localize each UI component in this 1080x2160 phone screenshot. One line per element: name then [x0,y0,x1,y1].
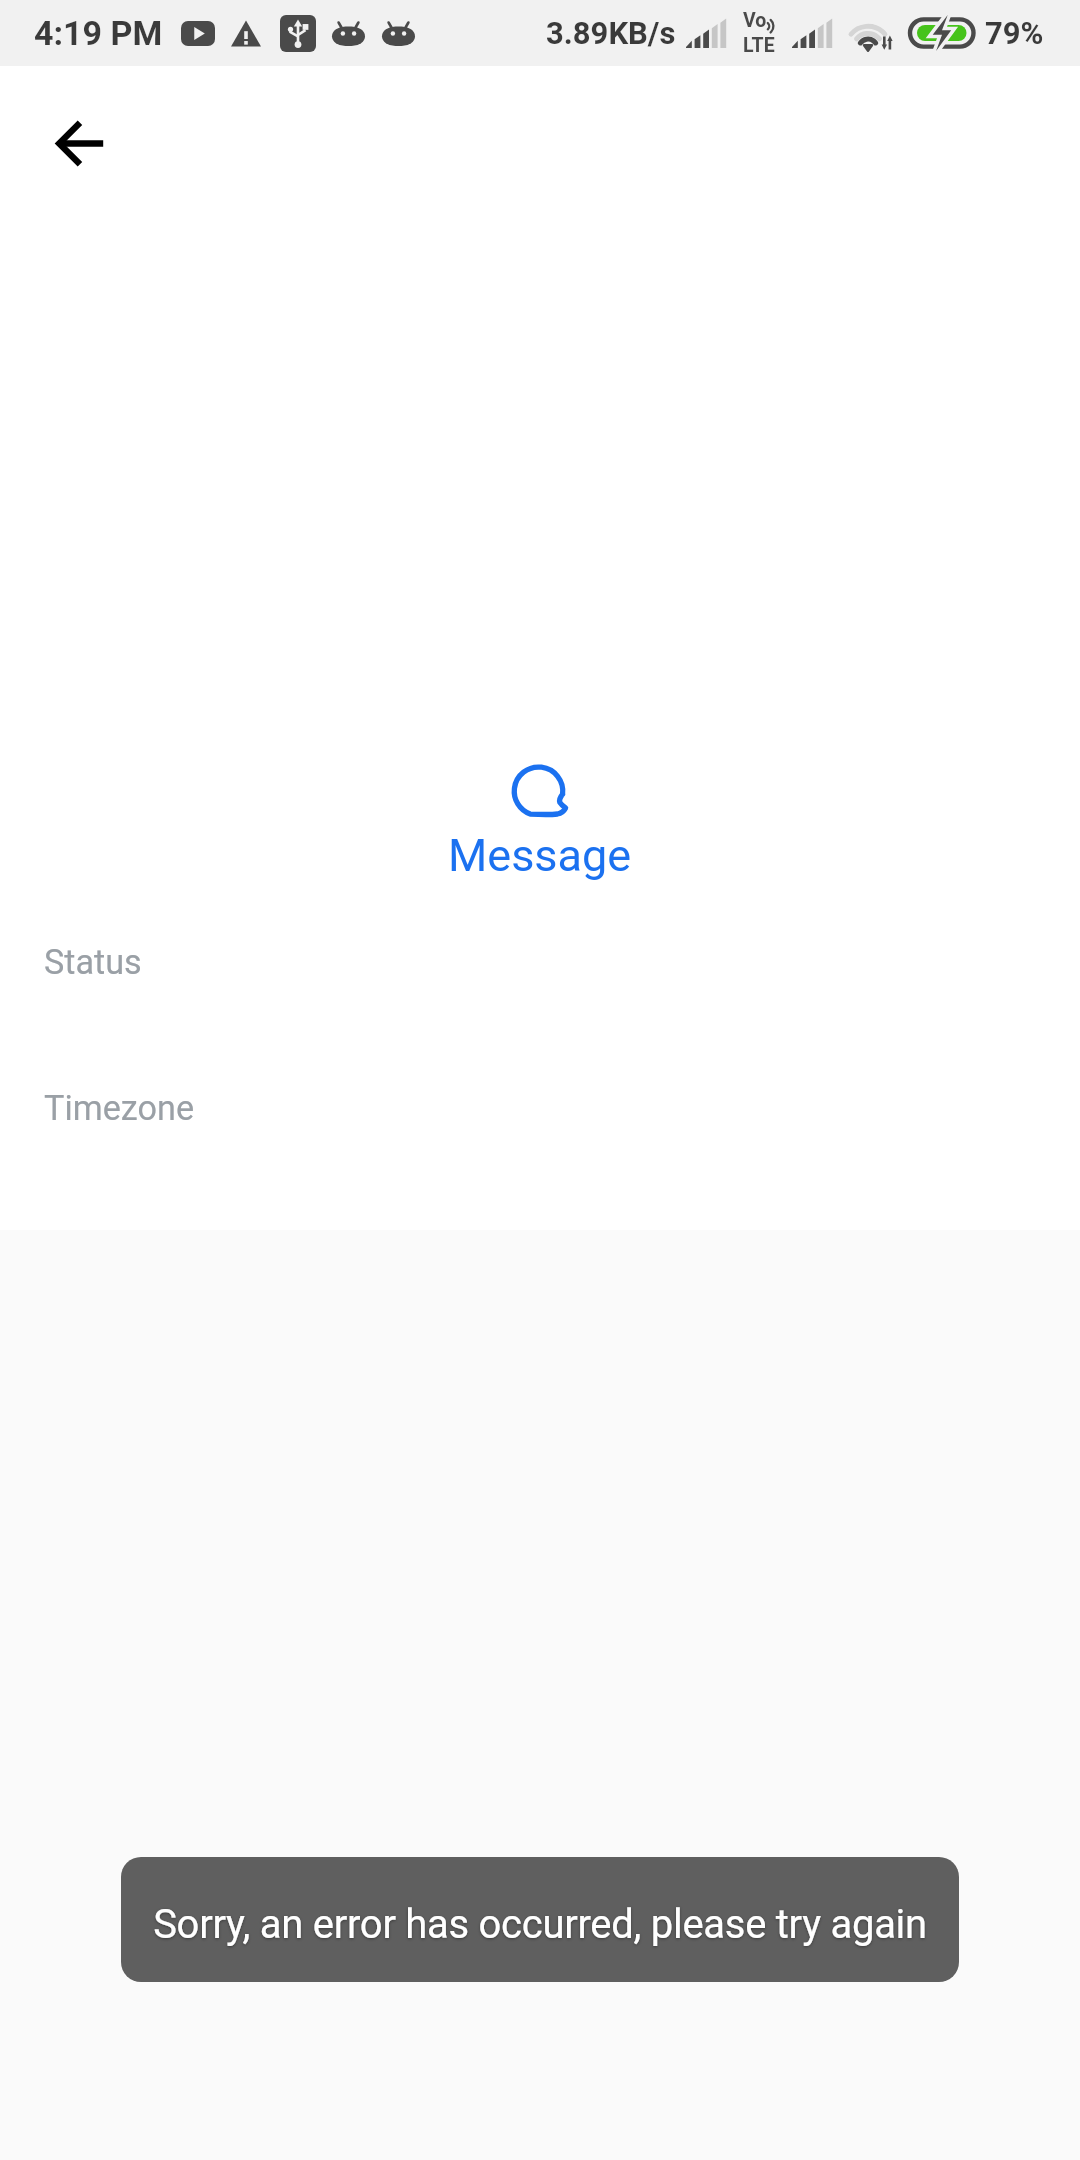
button[interactable]: Timezone [0,1050,1080,1196]
staticText: 4:19 PM [34,13,163,53]
staticText: LTE [743,34,775,57]
staticText: Vo [743,9,767,32]
staticText: Status [44,942,142,982]
button[interactable]: Status [0,904,1080,1050]
button[interactable]: Message [0,764,1080,882]
staticText: Timezone [44,1088,195,1128]
button[interactable]: Back [35,99,123,187]
staticText: Sorry, an error has occurred, please try… [153,1901,927,1948]
staticText: 3.89KB/s [546,15,676,51]
staticText: Message [448,829,632,882]
staticText: 79% [985,15,1044,51]
